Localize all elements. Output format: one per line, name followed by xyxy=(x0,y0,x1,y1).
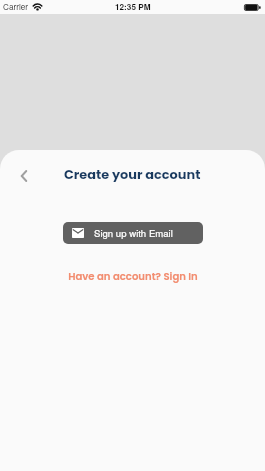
staticText: Have an account? Sign In xyxy=(68,269,198,283)
staticText: Carrier xyxy=(3,1,29,13)
staticText: Sign up with Email xyxy=(94,226,173,240)
staticText: Create your account xyxy=(64,165,201,183)
staticText: 12:35 PM xyxy=(115,1,151,13)
button[interactable]: Sign up with Email xyxy=(63,222,203,244)
button[interactable]: Have an account? Sign In xyxy=(62,266,204,286)
button[interactable]: Back xyxy=(11,163,37,189)
